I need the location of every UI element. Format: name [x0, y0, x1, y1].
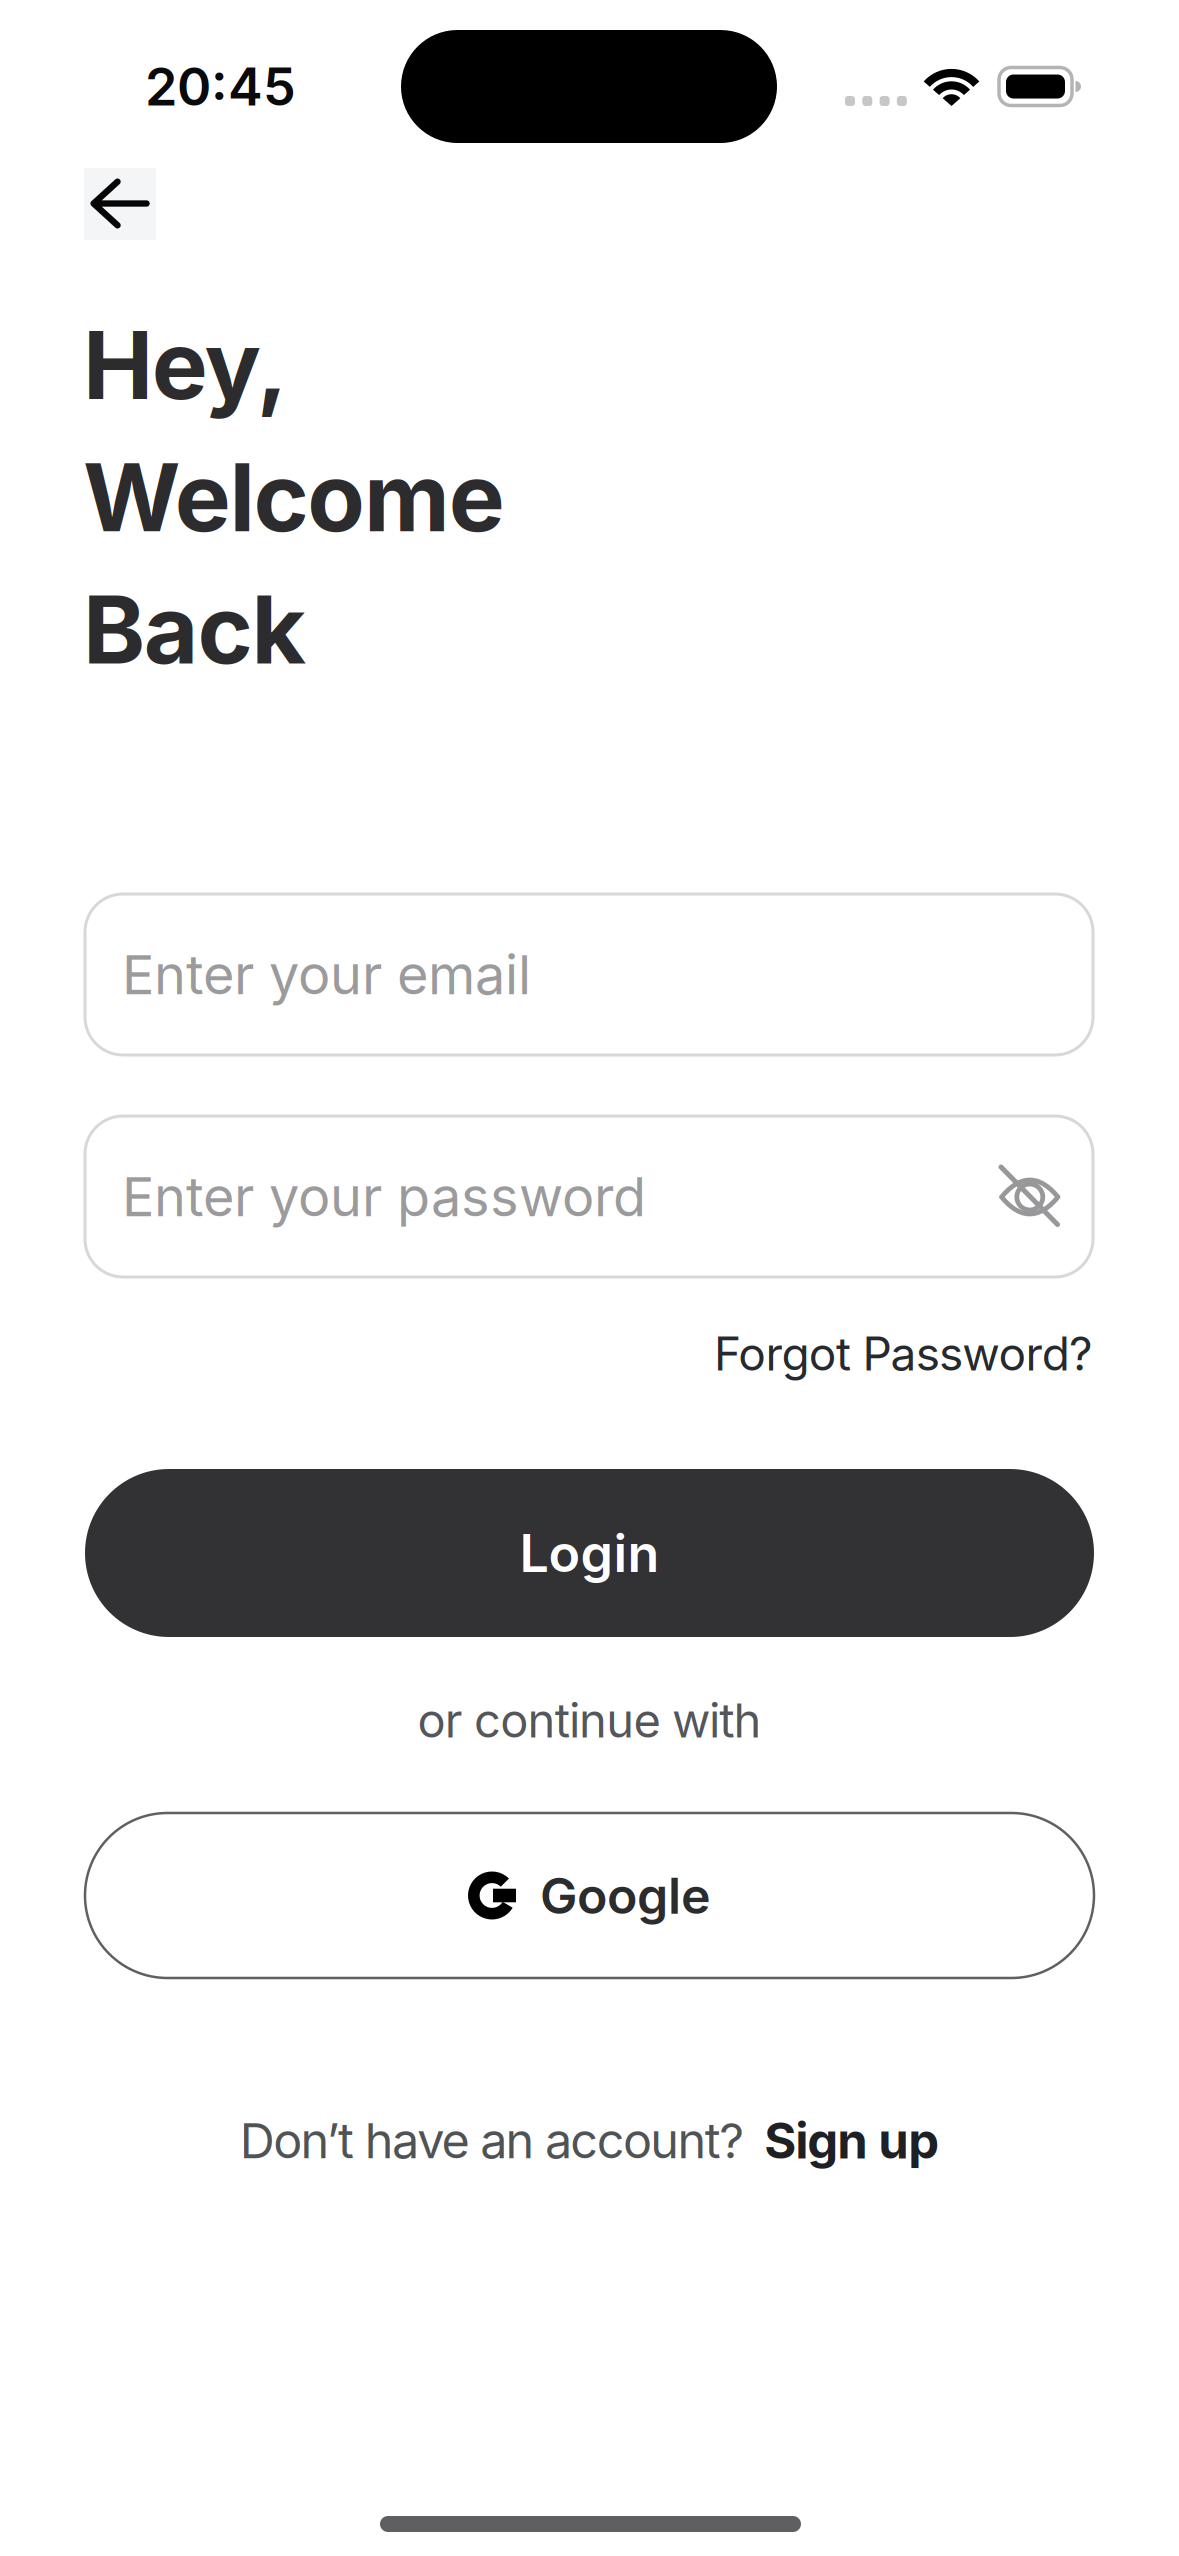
- button[interactable]: Enter your password: [85, 1116, 1093, 1277]
- staticText: Back: [83, 572, 306, 686]
- staticText: Enter your password: [122, 1164, 646, 1229]
- staticText: Login: [519, 1521, 659, 1584]
- button[interactable]: [1000, 1166, 1060, 1226]
- staticText: 20:45: [145, 55, 296, 118]
- staticText: Sign up: [764, 2111, 939, 2170]
- button[interactable]: Google: [85, 1813, 1094, 1978]
- button[interactable]: [84, 168, 156, 240]
- staticText: Enter your email: [122, 942, 531, 1007]
- button[interactable]: Login: [85, 1469, 1094, 1637]
- staticText: or continue with: [417, 1692, 761, 1749]
- staticText: Welcome: [83, 440, 505, 554]
- staticText: Don’t have an account?: [240, 2111, 744, 2170]
- button[interactable]: Enter your email: [85, 894, 1093, 1055]
- staticText: Google: [540, 1865, 711, 1926]
- button[interactable]: Forgot Password?: [714, 1326, 1093, 1382]
- staticText: Hey,: [83, 308, 287, 422]
- staticText: Forgot Password?: [714, 1326, 1093, 1382]
- button[interactable]: Don’t have an account?: [240, 2111, 939, 2170]
